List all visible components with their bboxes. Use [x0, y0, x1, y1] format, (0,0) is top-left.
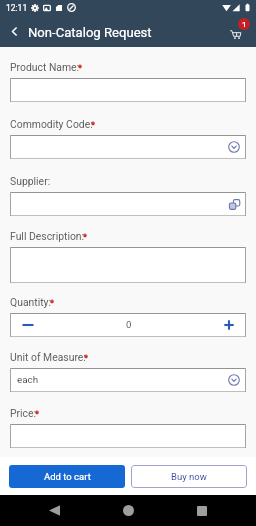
- button[interactable]: Increase quantity: [214, 313, 246, 337]
- button[interactable]: [10, 192, 246, 216]
- staticText: Price:: [10, 407, 37, 419]
- staticText: 12:11: [6, 3, 28, 13]
- staticText: Non-Catalog Request: [28, 25, 152, 40]
- staticText: 1: [242, 20, 247, 29]
- button[interactable]: Recent apps: [184, 495, 220, 526]
- button[interactable]: [10, 247, 246, 283]
- staticText: Product Name:: [10, 61, 80, 73]
- staticText: Commodity Code:: [10, 118, 93, 130]
- button[interactable]: [10, 424, 246, 448]
- button[interactable]: Add to cart: [9, 465, 125, 488]
- staticText: Full Description:: [10, 230, 85, 242]
- staticText: Supplier:: [10, 175, 51, 187]
- button[interactable]: Shopping cart: [223, 16, 253, 46]
- button[interactable]: Buy now: [131, 465, 247, 488]
- button[interactable]: each: [10, 368, 246, 392]
- button[interactable]: Decrease quantity: [10, 313, 42, 337]
- staticText: Quantity:: [10, 296, 52, 308]
- staticText: Buy now: [171, 471, 207, 482]
- button[interactable]: Home: [110, 495, 146, 526]
- button[interactable]: [10, 135, 246, 159]
- button[interactable]: Back: [2, 19, 26, 43]
- button[interactable]: [10, 78, 246, 102]
- staticText: each: [17, 374, 39, 385]
- staticText: Add to cart: [44, 471, 91, 482]
- button[interactable]: Back: [36, 495, 72, 526]
- staticText: Unit of Measure:: [10, 351, 86, 363]
- staticText: 0: [126, 319, 132, 330]
